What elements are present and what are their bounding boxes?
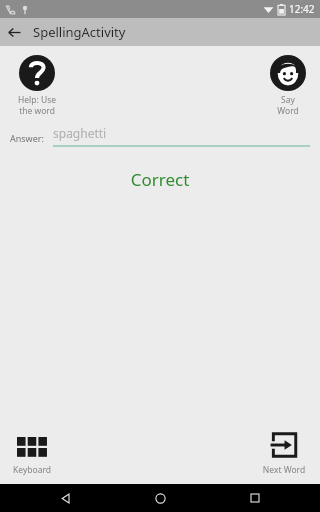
button[interactable]: Keyboard: [9, 437, 55, 476]
button[interactable]: Back: [0, 18, 28, 46]
staticText: spaghetti: [53, 125, 107, 141]
button[interactable]: Back: [35, 484, 95, 512]
button[interactable]: Home: [130, 484, 190, 512]
staticText: Say Word: [265, 94, 311, 116]
staticText: Help: Use the word: [9, 94, 65, 116]
staticText: Correct: [0, 168, 320, 191]
button[interactable]: spaghetti: [53, 125, 310, 147]
button[interactable]: Help: Use the word: [9, 55, 65, 116]
staticText: Next Word: [257, 464, 311, 476]
button[interactable]: Next Word: [257, 431, 311, 476]
staticText: 12:42: [289, 2, 315, 16]
staticText: Answer:: [10, 132, 44, 144]
button[interactable]: Say Word: [265, 55, 311, 116]
staticText: SpellingActivity: [33, 23, 126, 41]
button[interactable]: Recent apps: [225, 484, 285, 512]
staticText: Keyboard: [9, 464, 55, 476]
